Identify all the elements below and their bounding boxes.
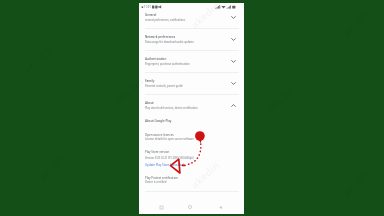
button[interactable]: Family bbox=[139, 75, 244, 95]
staticText: License details for open source software bbox=[145, 137, 194, 141]
staticText: Data usage for download audio updates bbox=[145, 40, 194, 44]
staticText: About Google Play bbox=[145, 119, 172, 123]
button[interactable]: Network preferences bbox=[139, 31, 244, 51]
other: Expand bbox=[231, 81, 236, 86]
staticText: About bbox=[145, 101, 154, 105]
button[interactable]: General bbox=[139, 9, 244, 29]
other: Expand bbox=[231, 59, 236, 64]
button[interactable]: About bbox=[139, 97, 244, 117]
staticText: akedin bbox=[188, 158, 222, 192]
staticText: Version 33.8.13-21 (91.209) (160-640dpi) bbox=[145, 156, 194, 160]
button[interactable]: Home bbox=[186, 203, 194, 211]
button[interactable]: Recents bbox=[157, 203, 165, 211]
staticText: Update Play Store (uptodate) bbox=[145, 163, 185, 167]
staticText: Device is certified bbox=[145, 180, 167, 184]
staticText: Parental controls, parent guide bbox=[145, 84, 183, 88]
staticText: Open source licences bbox=[145, 133, 174, 137]
staticText: 11:01 bbox=[144, 5, 151, 9]
other: Collapse bbox=[231, 103, 236, 108]
button[interactable]: Authentication bbox=[139, 53, 244, 73]
staticText: Authentication bbox=[145, 57, 167, 61]
staticText: Play Protect certification bbox=[145, 176, 178, 180]
other: Expand bbox=[231, 15, 236, 20]
staticText: Play store build version, device certifi… bbox=[145, 106, 198, 110]
staticText: akedin bbox=[112, 74, 146, 108]
button[interactable]: Back bbox=[216, 203, 224, 211]
staticText: Family bbox=[145, 79, 155, 83]
button[interactable]: Update Play Store (uptodate) bbox=[145, 163, 185, 167]
staticText: several preferences, notifications bbox=[145, 18, 186, 22]
staticText: Play Store version bbox=[145, 150, 170, 154]
staticText: General bbox=[145, 13, 157, 17]
other: Expand bbox=[231, 37, 236, 42]
staticText: Fingerprint, purchase authentication bbox=[145, 62, 190, 66]
staticText: Network preferences bbox=[145, 35, 176, 39]
staticText: akedin bbox=[188, 0, 222, 32]
